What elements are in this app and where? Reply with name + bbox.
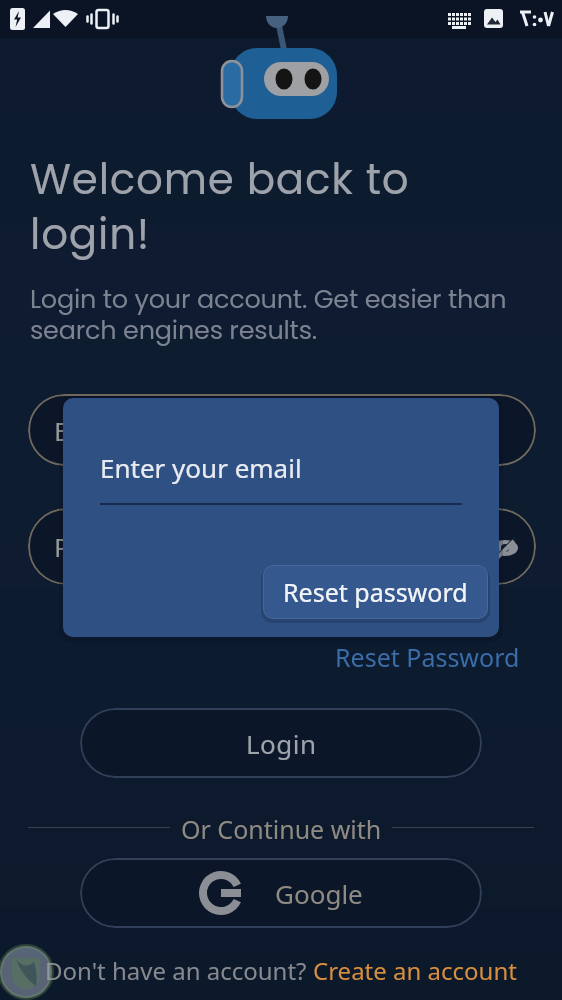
staticText: Reset password <box>283 575 468 609</box>
staticText: Or Continue with <box>181 812 382 846</box>
staticText: Enter your email <box>100 450 302 485</box>
button[interactable]: Reset password <box>263 565 488 619</box>
button[interactable] <box>488 532 522 566</box>
staticText: Login to your account. Get easier than s… <box>30 281 507 348</box>
staticText: Password <box>54 529 172 564</box>
button[interactable]: Email <box>28 394 536 466</box>
button[interactable]: Password <box>28 508 536 585</box>
button[interactable]: Login <box>80 708 482 778</box>
staticText: Email <box>54 413 121 448</box>
staticText: Don't have an account? <box>45 954 313 987</box>
button[interactable]: Reset Password <box>335 640 520 674</box>
button[interactable]: Create an account <box>313 954 517 987</box>
button[interactable]: Google <box>80 858 482 928</box>
staticText: Welcome back to login! <box>30 150 410 264</box>
staticText: Google <box>275 876 363 911</box>
staticText: Login <box>246 726 317 761</box>
